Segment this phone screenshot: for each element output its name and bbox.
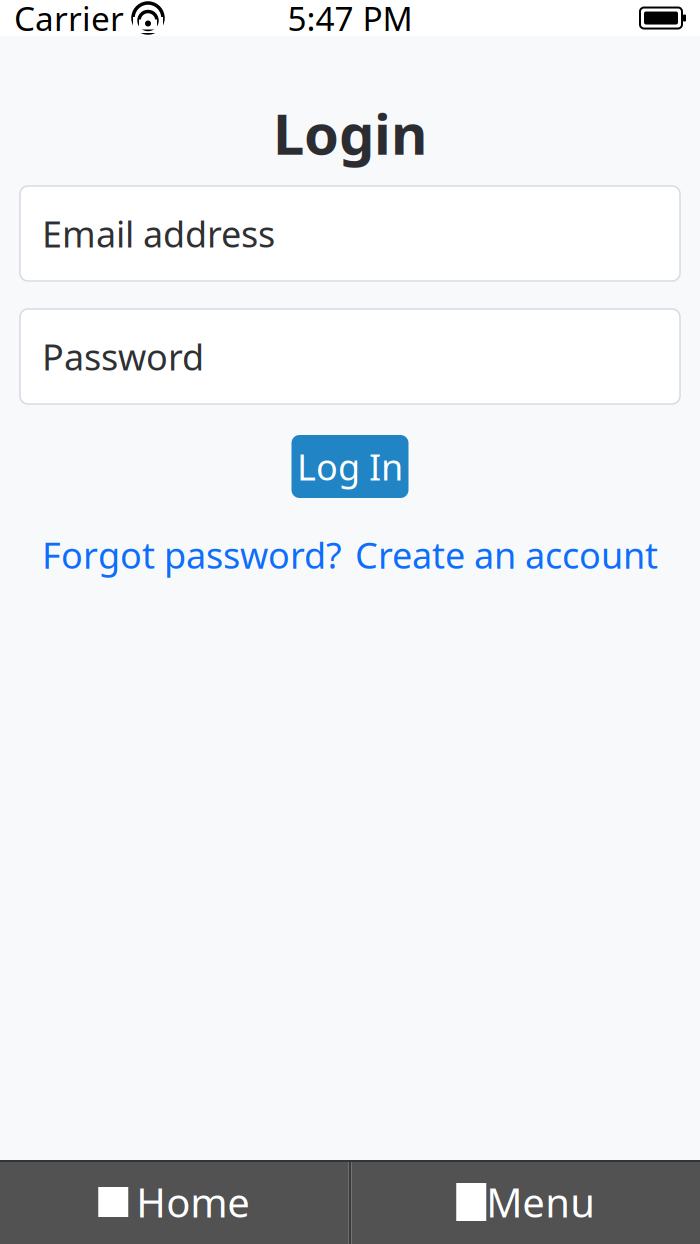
button[interactable]: Forgot password? xyxy=(42,531,342,579)
staticText: Password xyxy=(42,333,204,380)
staticText: Menu xyxy=(486,1175,595,1228)
staticText: Home xyxy=(136,1175,250,1228)
staticText: Create an account xyxy=(355,531,658,579)
button[interactable]: Menu xyxy=(351,1160,700,1244)
staticText: 5:47 PM xyxy=(287,0,412,40)
staticText: Carrier xyxy=(14,0,124,40)
staticText: Forgot password? xyxy=(42,531,342,579)
staticText: Email address xyxy=(42,210,275,257)
button[interactable]: Create an account xyxy=(355,531,658,579)
staticText: Log In xyxy=(297,443,403,490)
button[interactable]: Home xyxy=(0,1160,348,1244)
button[interactable]: Log In xyxy=(291,435,408,498)
staticText: Login xyxy=(273,96,427,170)
